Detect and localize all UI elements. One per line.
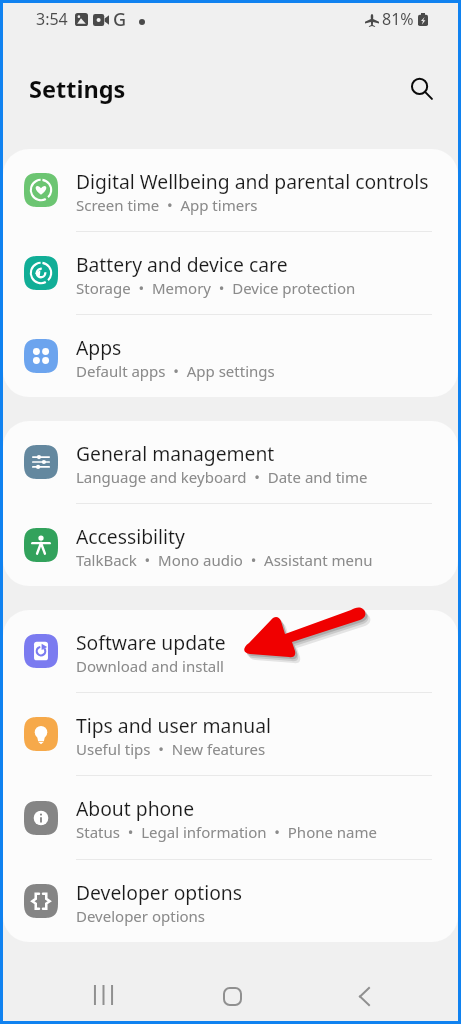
staticText: Digital Wellbeing and parental controls xyxy=(76,168,429,194)
staticText: Apps xyxy=(76,334,122,360)
staticText: TalkBack • Mono audio • Assistant menu xyxy=(76,550,373,570)
staticText: G xyxy=(113,7,127,32)
button[interactable]: Digital Wellbeing and parental controls xyxy=(3,149,458,232)
staticText: Developer options xyxy=(76,879,242,905)
staticText: Storage • Memory • Device protection xyxy=(76,278,356,298)
button[interactable]: Home xyxy=(208,972,256,1020)
button[interactable]: About phone xyxy=(3,776,458,860)
button[interactable]: Accessibility xyxy=(3,504,458,586)
staticText: Battery and device care xyxy=(76,251,288,277)
staticText: General management xyxy=(76,440,275,466)
button[interactable]: General management xyxy=(3,421,458,504)
staticText: Software update xyxy=(76,629,226,655)
staticText: Developer options xyxy=(76,906,206,926)
staticText: Screen time • App timers xyxy=(76,195,258,215)
staticText: Accessibility xyxy=(76,523,185,549)
button[interactable]: Back xyxy=(340,972,388,1020)
staticText: Default apps • App settings xyxy=(76,361,275,381)
button[interactable]: Tips and user manual xyxy=(3,693,458,776)
button[interactable]: Recents xyxy=(79,971,127,1019)
button[interactable]: Search xyxy=(399,67,443,111)
staticText: About phone xyxy=(76,795,195,821)
button[interactable]: Software update xyxy=(3,610,458,693)
staticText: Download and install xyxy=(76,656,224,676)
staticText: Useful tips • New features xyxy=(76,739,266,759)
button[interactable]: Apps xyxy=(3,315,458,397)
staticText: 81% xyxy=(382,8,414,30)
staticText: Settings xyxy=(29,73,126,105)
staticText: Language and keyboard • Date and time xyxy=(76,467,368,487)
staticText: Tips and user manual xyxy=(76,712,272,738)
staticText: Status • Legal information • Phone name xyxy=(76,822,378,842)
staticText: 3:54 xyxy=(36,8,68,30)
button[interactable]: Developer options xyxy=(3,860,458,942)
button[interactable]: Battery and device care xyxy=(3,232,458,315)
